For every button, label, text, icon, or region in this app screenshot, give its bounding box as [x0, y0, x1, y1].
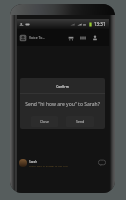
staticText: Send "hi how are you" to Sarah?	[20, 101, 105, 108]
staticText: m	[83, 22, 87, 27]
button[interactable]: Close	[31, 116, 58, 127]
staticText: Touch here to answer to this SMS	[29, 164, 68, 167]
button[interactable]: Send	[66, 116, 94, 127]
staticText: Sarah	[29, 160, 38, 164]
staticText: Voice To...	[29, 35, 46, 40]
staticText: Confirm	[20, 85, 105, 89]
button[interactable]: Grid	[78, 33, 88, 43]
button[interactable]: Contacts	[90, 33, 100, 43]
staticText: 13:31	[94, 21, 106, 27]
button[interactable]: Cart	[66, 33, 76, 43]
button[interactable]: Sarah	[17, 155, 109, 171]
staticText: Send	[76, 119, 85, 124]
staticText: Close	[40, 119, 49, 124]
